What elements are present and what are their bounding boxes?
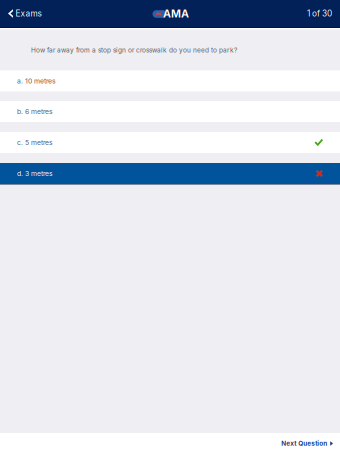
button[interactable]: Next Question [281,433,340,454]
staticText: 1 of 30 [307,8,332,18]
staticText: Exams [15,8,41,18]
staticText: b. 6 metres [17,107,53,116]
staticText: How far away from a stop sign or crosswa… [31,46,237,54]
button[interactable]: Exams [0,0,47,27]
staticText: AMA [163,7,189,20]
staticText: d. 3 metres [17,169,53,178]
button[interactable]: a. 10 metres [0,70,340,91]
button[interactable]: 1 of 30 [307,0,340,27]
button[interactable]: d. 3 metres [0,163,340,184]
button[interactable]: b. 6 metres [0,101,340,122]
staticText: Next Question [281,440,327,447]
staticText: c. 5 metres [17,138,53,147]
staticText: a. 10 metres [17,77,56,85]
button[interactable]: c. 5 metres [0,132,340,153]
